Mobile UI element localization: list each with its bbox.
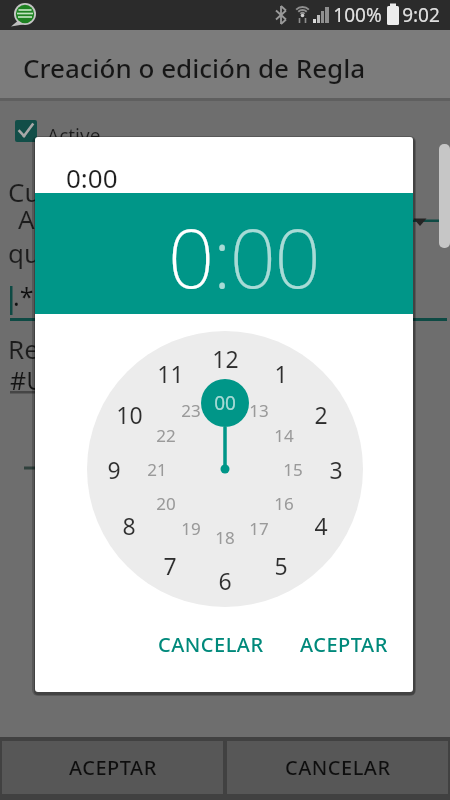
staticText: 9:02 [402,2,440,28]
staticText: Resp [8,331,68,366]
button[interactable] [15,120,37,142]
staticText: 7 [163,550,177,580]
staticText: CANCELAR [158,631,264,658]
staticText: 2 [314,399,328,429]
staticText: 00 [214,390,236,416]
staticText: 4 [314,510,328,540]
staticText: 1 [274,358,288,388]
staticText: 18 [215,526,235,549]
staticText: 21 [147,458,167,481]
staticText: ACEPTAR [300,631,388,658]
staticText: 15 [283,458,303,481]
staticText: 19 [181,517,201,540]
staticText: Andr [18,201,78,236]
staticText: Active [47,123,101,149]
staticText: 14 [274,424,294,447]
staticText: 16 [274,492,294,515]
staticText: .*[Dd [13,279,76,313]
staticText: 10 [116,399,143,429]
staticText: Creación o edición de Regla [23,50,366,85]
staticText: Cuando [8,174,103,209]
staticText: 3 [329,454,343,484]
button[interactable]: ACEPTAR [2,741,223,794]
staticText: 17 [249,517,269,540]
staticText: 6 [218,565,232,595]
staticText: 0:00 [168,201,320,311]
staticText: 12 [212,343,239,373]
staticText: 100% [333,2,382,28]
staticText: 5 [274,550,288,580]
staticText: 9 [107,454,121,484]
staticText: 22 [156,424,176,447]
staticText: 23 [181,399,201,422]
staticText: 8 [122,510,136,540]
button[interactable]: CANCELAR [145,620,277,668]
staticText: 20 [156,492,176,515]
button[interactable]: CANCELAR [227,741,448,794]
button[interactable]: ACEPTAR [282,620,406,668]
staticText: ACEPTAR [69,754,157,781]
staticText: 11 [157,358,184,388]
staticText: 0:00 [66,160,118,195]
staticText: que co [8,235,90,270]
staticText: 13 [249,399,269,422]
staticText: #Un [10,363,60,397]
staticText: CANCELAR [285,754,391,781]
